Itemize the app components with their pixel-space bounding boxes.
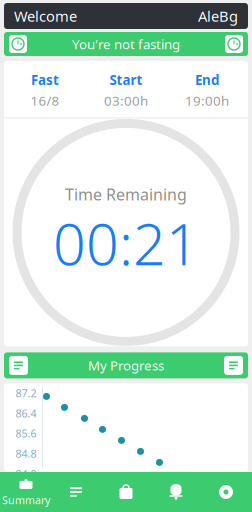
staticText: AleBg: [198, 6, 238, 26]
button[interactable]: You're not fasting: [4, 32, 248, 56]
staticText: 87.2: [15, 386, 36, 400]
button[interactable]: Shop: [101, 472, 151, 512]
staticText: Summary: [2, 493, 50, 507]
staticText: 00:21: [53, 205, 199, 281]
staticText: 84.0: [15, 467, 36, 481]
button[interactable]: My Progress: [4, 352, 248, 378]
button[interactable]: Notifications: [151, 472, 201, 512]
staticText: Fast: [31, 71, 59, 89]
button[interactable]: AleBg: [198, 6, 238, 26]
staticText: 86.4: [15, 406, 36, 420]
staticText: You're not fasting: [72, 35, 180, 53]
staticText: Time Remaining: [65, 184, 187, 205]
button[interactable]: Notes: [51, 472, 101, 512]
staticText: My Progress: [88, 357, 164, 374]
staticText: 85.6: [15, 426, 36, 440]
staticText: 19:00h: [185, 92, 229, 109]
staticText: Welcome: [14, 6, 77, 26]
staticText: 16/8: [30, 92, 59, 109]
button[interactable]: Summary: [1, 472, 51, 512]
staticText: Start: [109, 71, 142, 89]
button[interactable]: Settings: [201, 472, 251, 512]
staticText: 03:00h: [104, 92, 148, 109]
staticText: End: [195, 71, 219, 89]
staticText: 84.8: [15, 446, 36, 461]
